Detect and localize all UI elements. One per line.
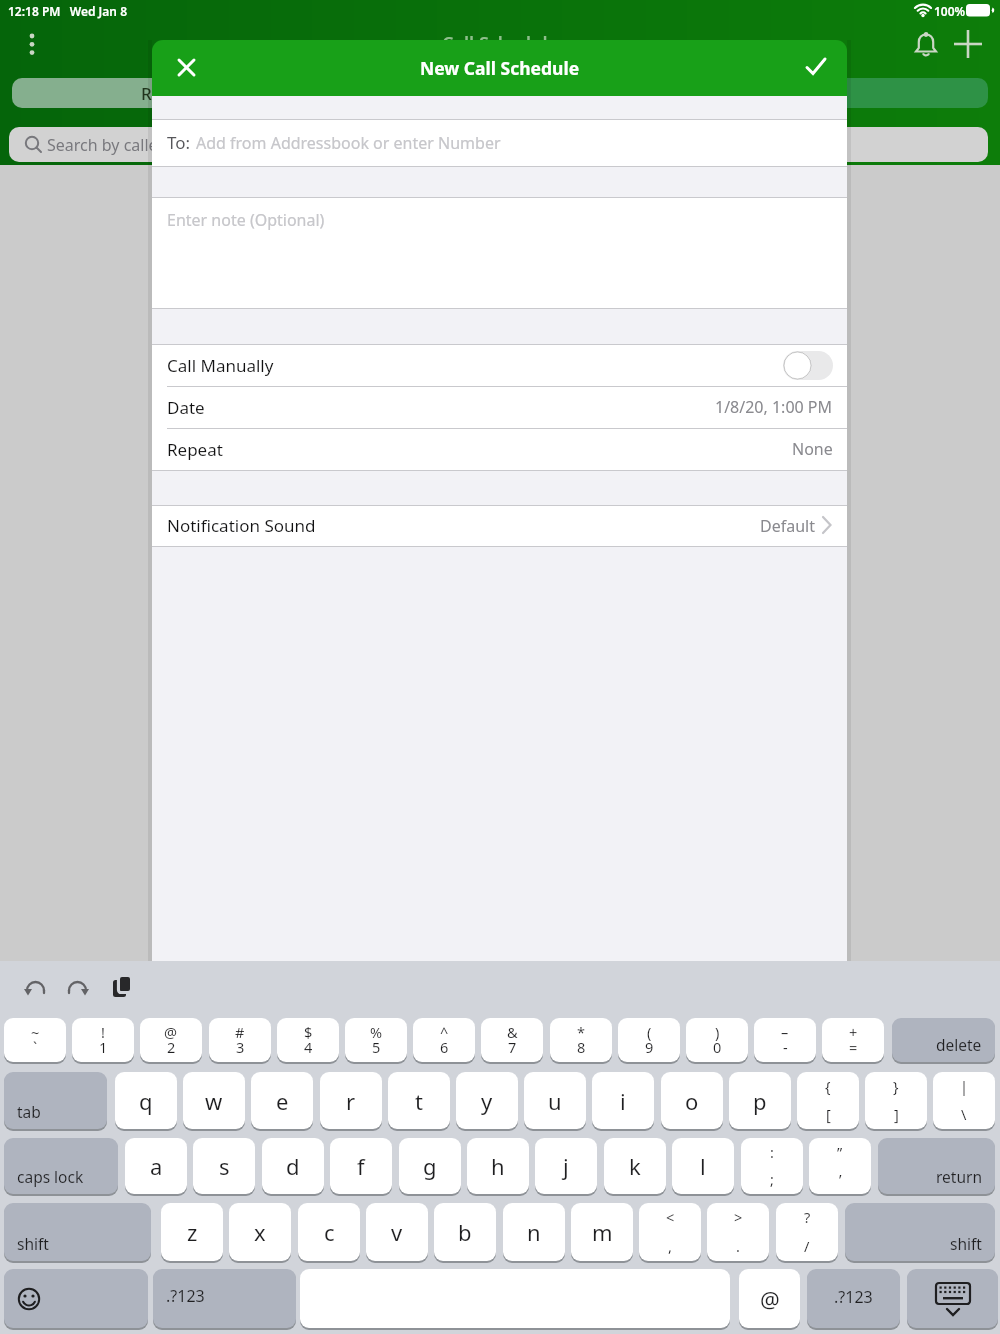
- button[interactable]: [177, 58, 197, 78]
- button[interactable]: i: [592, 1072, 654, 1129]
- staticText: Default: [760, 515, 815, 537]
- staticText: =: [849, 1037, 858, 1057]
- button[interactable]: c: [298, 1203, 360, 1261]
- button[interactable]: .?123: [166, 1269, 283, 1328]
- button[interactable]: ^: [413, 1018, 475, 1062]
- button[interactable]: [954, 30, 982, 58]
- button[interactable]: delete: [905, 1018, 982, 1062]
- button[interactable]: [110, 974, 136, 1002]
- button[interactable]: }: [865, 1072, 927, 1129]
- button[interactable]: m: [571, 1203, 633, 1261]
- button[interactable]: shift: [858, 1203, 982, 1261]
- button[interactable]: p: [729, 1072, 791, 1129]
- button[interactable]: e: [251, 1072, 313, 1129]
- staticText: .: [736, 1236, 740, 1256]
- button[interactable]: [913, 32, 939, 59]
- button[interactable]: @: [140, 1018, 202, 1062]
- staticText: `: [33, 1037, 38, 1057]
- staticText: k: [629, 1151, 641, 1181]
- button[interactable]: &: [481, 1018, 543, 1062]
- button[interactable]: [300, 1269, 730, 1328]
- staticText: [: [826, 1104, 831, 1124]
- staticText: delete: [936, 1034, 982, 1055]
- button[interactable]: !: [72, 1018, 134, 1062]
- button[interactable]: a: [125, 1138, 187, 1194]
- button[interactable]: {: [797, 1072, 859, 1129]
- staticText: }: [893, 1076, 899, 1096]
- staticText: @: [760, 1284, 780, 1314]
- staticText: s: [219, 1151, 230, 1181]
- button[interactable]: $: [277, 1018, 339, 1062]
- staticText: u: [548, 1086, 562, 1116]
- button[interactable]: w: [183, 1072, 245, 1129]
- button[interactable]: [17, 1269, 135, 1328]
- button[interactable]: #: [209, 1018, 271, 1062]
- button[interactable]: [805, 57, 827, 77]
- button[interactable]: o: [661, 1072, 723, 1129]
- staticText: ,: [668, 1236, 672, 1256]
- button[interactable]: :: [741, 1138, 803, 1194]
- button[interactable]: –: [754, 1018, 816, 1062]
- button[interactable]: ~: [4, 1018, 66, 1062]
- staticText: ^: [440, 1022, 449, 1042]
- button[interactable]: tab: [17, 1072, 94, 1129]
- button[interactable]: d: [262, 1138, 324, 1194]
- button[interactable]: .?123: [807, 1269, 900, 1328]
- button[interactable]: <: [639, 1203, 701, 1261]
- button[interactable]: Search by callee, number or note: [9, 127, 988, 162]
- button[interactable]: h: [467, 1138, 529, 1194]
- staticText: p: [753, 1086, 767, 1116]
- staticText: e: [276, 1086, 289, 1116]
- button[interactable]: caps lock: [17, 1138, 105, 1194]
- staticText: 7: [508, 1037, 517, 1057]
- button[interactable]: [783, 351, 833, 380]
- staticText: Call Schedule: [442, 31, 559, 56]
- staticText: h: [491, 1151, 505, 1181]
- staticText: z: [187, 1217, 198, 1247]
- button[interactable]: n: [503, 1203, 565, 1261]
- button[interactable]: *: [550, 1018, 612, 1062]
- button[interactable]: s: [193, 1138, 255, 1194]
- staticText: %: [370, 1022, 383, 1042]
- staticText: To:: [167, 131, 191, 154]
- button[interactable]: y: [456, 1072, 518, 1129]
- button[interactable]: return: [891, 1138, 982, 1194]
- button[interactable]: |: [933, 1072, 995, 1129]
- button[interactable]: ?: [776, 1203, 838, 1261]
- button[interactable]: g: [399, 1138, 461, 1194]
- staticText: Search by callee, number or note: [47, 134, 295, 156]
- button[interactable]: t: [388, 1072, 450, 1129]
- button[interactable]: @: [739, 1269, 800, 1328]
- staticText: 12:18 PM Wed Jan 8: [8, 3, 127, 19]
- button[interactable]: shift: [17, 1203, 138, 1261]
- staticText: w: [205, 1086, 223, 1116]
- button[interactable]: b: [434, 1203, 496, 1261]
- button[interactable]: [66, 977, 89, 999]
- button[interactable]: (: [618, 1018, 680, 1062]
- button[interactable]: ): [686, 1018, 748, 1062]
- button[interactable]: [152, 197, 847, 308]
- button[interactable]: [152, 119, 847, 166]
- button[interactable]: [152, 505, 847, 546]
- staticText: /: [804, 1236, 810, 1256]
- button[interactable]: z: [161, 1203, 223, 1261]
- button[interactable]: j: [535, 1138, 597, 1194]
- button[interactable]: r: [320, 1072, 382, 1129]
- button[interactable]: >: [707, 1203, 769, 1261]
- button[interactable]: x: [229, 1203, 291, 1261]
- button[interactable]: %: [345, 1018, 407, 1062]
- staticText: 5: [372, 1037, 381, 1057]
- button[interactable]: k: [604, 1138, 666, 1194]
- button[interactable]: l: [672, 1138, 734, 1194]
- staticText: :: [770, 1142, 774, 1162]
- button[interactable]: ”: [809, 1138, 871, 1194]
- button[interactable]: +: [822, 1018, 884, 1062]
- button[interactable]: [24, 977, 47, 999]
- button[interactable]: q: [115, 1072, 177, 1129]
- button[interactable]: [907, 1269, 998, 1328]
- staticText: return: [936, 1166, 982, 1187]
- staticText: b: [458, 1217, 472, 1247]
- button[interactable]: u: [524, 1072, 586, 1129]
- button[interactable]: v: [366, 1203, 428, 1261]
- button[interactable]: f: [330, 1138, 392, 1194]
